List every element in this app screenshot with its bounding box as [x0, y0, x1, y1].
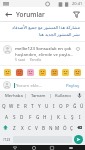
- button[interactable]: Ana ekran: [29, 145, 38, 150]
- staticText: Paylaş: [66, 82, 80, 88]
- staticText: Ü: [80, 103, 84, 109]
- button[interactable]: Klavye: [66, 145, 75, 150]
- button[interactable]: Sesle yaz: [75, 91, 83, 100]
- button[interactable]: Tamam: [26, 91, 50, 100]
- button[interactable]: O: [57, 100, 64, 111]
- button[interactable]: S: [10, 111, 18, 122]
- button[interactable]: Ü: [78, 100, 85, 111]
- button[interactable]: Yorum ekle...: [14, 82, 64, 88]
- button[interactable]: Emoji: [15, 68, 24, 77]
- button[interactable]: V: [33, 122, 40, 133]
- button[interactable]: Ğ: [71, 100, 78, 111]
- button[interactable]: J: [48, 111, 55, 122]
- button[interactable]: Z: [10, 122, 18, 133]
- staticText: S: [13, 114, 16, 120]
- staticText: Ş: [71, 114, 74, 120]
- button[interactable]: mellie123 Sonsuzluk en çok: [0, 42, 85, 65]
- button[interactable]: R: [22, 100, 29, 111]
- staticText: F: [29, 114, 32, 120]
- button[interactable]: C: [26, 122, 33, 133]
- staticText: Z: [13, 125, 16, 131]
- staticText: 20:41: [72, 1, 83, 6]
- staticText: I: [53, 103, 55, 109]
- button[interactable]: Filtrele: [71, 9, 82, 20]
- button[interactable]: Emoji: [3, 68, 12, 77]
- staticText: Y: [38, 103, 41, 109]
- staticText: Merhaba: [5, 93, 23, 99]
- button[interactable]: Geri: [3, 9, 14, 20]
- button[interactable]: G: [34, 111, 41, 122]
- button[interactable]: D: [18, 111, 26, 122]
- staticText: نشر المنشور الجديد هنا: [38, 31, 80, 37]
- staticText: Q: [2, 103, 6, 109]
- staticText: Tamam: [31, 93, 46, 99]
- staticText: O: [59, 103, 63, 109]
- button[interactable]: Ş: [69, 111, 76, 122]
- button[interactable]: X: [18, 122, 26, 133]
- staticText: Yorum ekle...: [16, 82, 43, 88]
- button[interactable]: Yorumlar: [16, 10, 71, 19]
- button[interactable]: Q: [0, 100, 8, 111]
- staticText: V: [35, 125, 38, 131]
- button[interactable]: Paylaş: [64, 80, 82, 90]
- button[interactable]: M: [54, 122, 61, 133]
- button[interactable]: W: [8, 100, 15, 111]
- button[interactable]: مشاركة هذا المنشور مع جميع الأصدقاء: [0, 22, 85, 39]
- button[interactable]: Emoji: [38, 68, 47, 77]
- button[interactable]: T: [29, 100, 36, 111]
- staticText: G: [36, 114, 40, 120]
- button[interactable]: Kullanıcı: [51, 91, 75, 100]
- staticText: R: [24, 103, 27, 109]
- button[interactable]: ?123: [2, 134, 12, 144]
- button[interactable]: I: [76, 111, 83, 122]
- staticText: Ğ: [73, 103, 77, 109]
- staticText: I: [79, 114, 81, 120]
- staticText: J: [51, 114, 53, 120]
- button[interactable]: E: [15, 100, 22, 111]
- button[interactable]: I: [50, 100, 57, 111]
- button[interactable]: U: [43, 100, 50, 111]
- button[interactable]: Emoji: [50, 68, 59, 77]
- staticText: ?123: [3, 137, 11, 142]
- button[interactable]: A: [2, 111, 10, 122]
- staticText: U: [45, 103, 49, 109]
- button[interactable]: N: [47, 122, 54, 133]
- staticText: Ö: [63, 125, 67, 131]
- button[interactable]: L: [62, 111, 69, 122]
- button[interactable]: Emoji: [73, 68, 82, 77]
- staticText: A: [5, 114, 8, 120]
- staticText: D: [20, 114, 24, 120]
- staticText: 5 saat Yanıtla: [15, 57, 41, 62]
- staticText: K: [57, 114, 60, 120]
- button[interactable]: Beğen: [74, 45, 82, 53]
- button[interactable]: Emoji: [26, 68, 35, 77]
- button[interactable]: H: [41, 111, 48, 122]
- staticText: N: [49, 125, 53, 131]
- button[interactable]: B: [40, 122, 47, 133]
- button[interactable]: Gönder: [74, 135, 83, 144]
- staticText: W: [9, 103, 14, 109]
- staticText: T: [31, 103, 34, 109]
- button[interactable]: Son uygulamalar: [47, 145, 56, 150]
- button[interactable]: P: [64, 100, 71, 111]
- button[interactable]: F: [26, 111, 34, 122]
- staticText: X: [21, 125, 24, 131]
- staticText: E: [17, 103, 20, 109]
- button[interactable]: Ö: [61, 122, 68, 133]
- button[interactable]: Ç: [68, 122, 75, 133]
- staticText: Ç: [70, 125, 73, 131]
- staticText: Kullanıcı: [55, 93, 72, 99]
- staticText: hoşlandım, elimde ve paylaşan cihaz: [15, 51, 74, 57]
- button[interactable]: Geri: [10, 145, 19, 150]
- staticText: مشاركة هذا المنشور مع جميع الأصدقاء: [12, 24, 80, 30]
- button[interactable]: K: [55, 111, 62, 122]
- button[interactable]: Emoji: [61, 68, 70, 77]
- button[interactable]: Shift: [1, 122, 10, 133]
- button[interactable]: Merhaba: [2, 91, 25, 100]
- button[interactable]: Sil: [75, 122, 84, 133]
- button[interactable]: Y: [36, 100, 43, 111]
- staticText: H: [43, 114, 47, 120]
- staticText: B: [42, 125, 45, 131]
- staticText: L: [64, 114, 67, 120]
